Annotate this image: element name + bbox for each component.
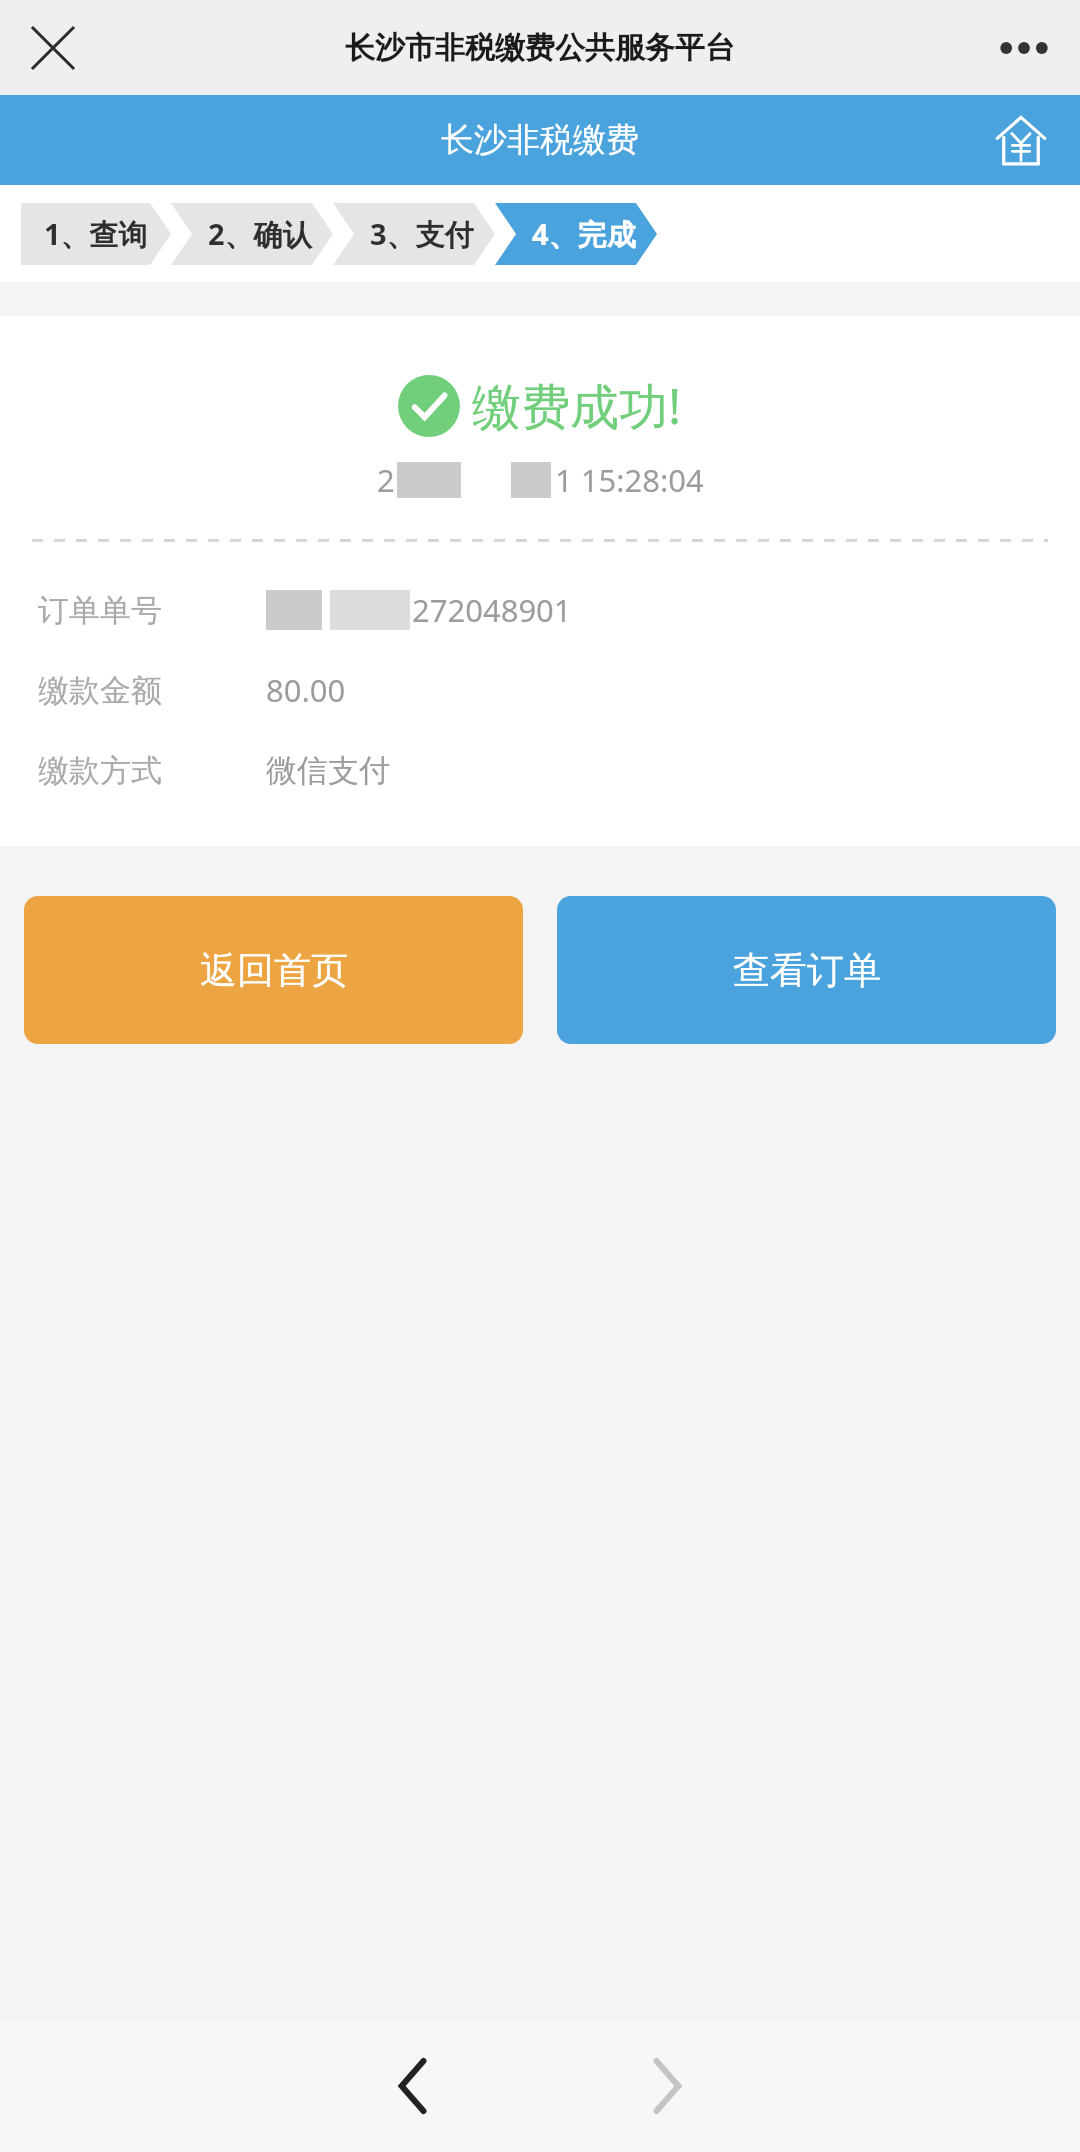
- staticText: 1 15:28:04: [555, 459, 704, 501]
- button[interactable]: 3、支付: [333, 203, 495, 265]
- staticText: 微信支付: [266, 751, 390, 790]
- button[interactable]: 2、确认: [171, 203, 333, 265]
- button[interactable]: Home: [986, 105, 1056, 175]
- button[interactable]: Close: [22, 17, 84, 79]
- staticText: 缴款金额: [38, 671, 162, 710]
- staticText: 2、确认: [208, 214, 312, 254]
- button[interactable]: More options: [988, 12, 1060, 84]
- staticText: 2: [377, 459, 395, 501]
- button[interactable]: Back: [365, 2038, 461, 2134]
- staticText: 缴费成功!: [472, 372, 682, 439]
- staticText: 4、完成: [532, 214, 636, 254]
- button[interactable]: 1、查询: [21, 203, 171, 265]
- staticText: 1、查询: [44, 214, 148, 254]
- staticText: 返回首页: [200, 947, 348, 994]
- staticText: 长沙市非税缴费公共服务平台: [345, 29, 735, 67]
- staticText: 80.00: [266, 669, 346, 711]
- button[interactable]: 返回首页: [24, 896, 523, 1044]
- button[interactable]: Forward: [619, 2038, 715, 2134]
- staticText: 查看订单: [733, 947, 881, 994]
- staticText: 长沙非税缴费: [441, 119, 639, 161]
- staticText: 缴款方式: [38, 751, 162, 790]
- staticText: 3、支付: [370, 214, 474, 254]
- staticText: 272048901: [412, 589, 572, 631]
- staticText: 订单单号: [38, 591, 162, 630]
- button[interactable]: 查看订单: [557, 896, 1056, 1044]
- button[interactable]: 4、完成: [495, 203, 657, 265]
